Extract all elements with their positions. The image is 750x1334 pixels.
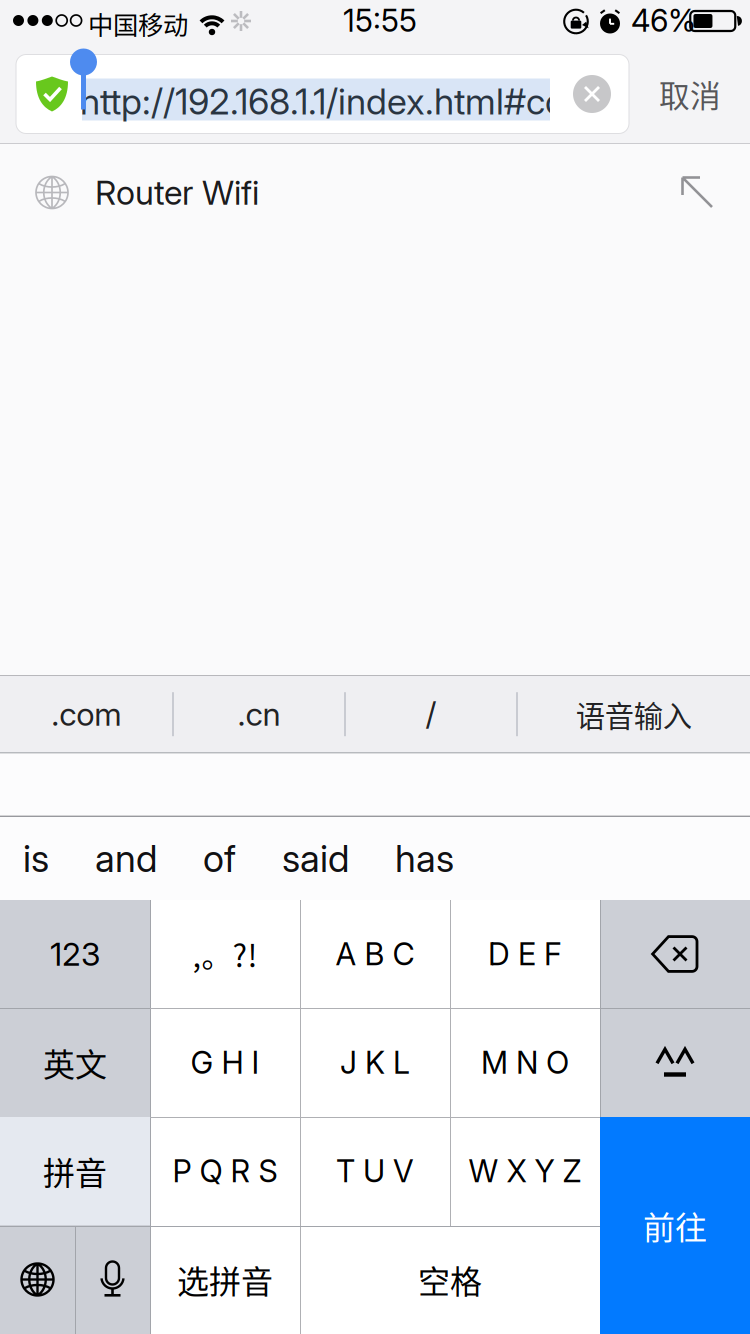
button[interactable] — [600, 1225, 750, 1334]
staticText: ,。?! — [192, 932, 257, 976]
staticText: T U V — [336, 1152, 414, 1189]
button[interactable]: 空格 — [300, 1225, 600, 1334]
staticText: and — [95, 836, 157, 881]
button[interactable]: ,。?! — [150, 900, 300, 1008]
staticText: 选拼音 — [177, 1256, 273, 1303]
staticText: 取消 — [659, 72, 721, 116]
staticText: A B C — [335, 935, 414, 972]
button[interactable]: M N O — [450, 1008, 600, 1117]
staticText: of — [203, 836, 236, 881]
staticText: / — [425, 695, 436, 733]
button[interactable]: 选拼音 — [150, 1225, 300, 1334]
button[interactable] — [75, 1225, 150, 1334]
button[interactable]: said — [259, 817, 372, 900]
staticText: 中国移动 — [88, 5, 188, 42]
button[interactable]: / — [346, 676, 516, 752]
button[interactable]: Router Wifi — [0, 144, 750, 241]
button[interactable]: and — [72, 817, 180, 900]
staticText: is — [23, 836, 49, 881]
button[interactable]: D E F — [450, 900, 600, 1008]
staticText: Router Wifi — [95, 172, 259, 213]
staticText: 46% — [631, 2, 696, 39]
button[interactable] — [600, 900, 750, 1008]
staticText: said — [282, 836, 349, 881]
staticText: 123 — [50, 935, 100, 973]
button[interactable]: T U V — [300, 1117, 450, 1225]
button[interactable] — [600, 1117, 750, 1225]
button[interactable]: 取消 — [644, 45, 736, 143]
staticText: 空格 — [418, 1256, 482, 1303]
button[interactable]: G H I — [150, 1008, 300, 1117]
button[interactable]: J K L — [300, 1008, 450, 1117]
button[interactable]: A B C — [300, 900, 450, 1008]
staticText: 前往 — [643, 1202, 707, 1249]
staticText: G H I — [190, 1044, 259, 1081]
button[interactable]: 123 — [0, 900, 150, 1008]
button[interactable]: of — [180, 817, 259, 900]
button[interactable]: http://192.168.1.1/index.html#con — [16, 45, 629, 143]
button[interactable]: 拼音 — [0, 1117, 150, 1225]
button[interactable]: 前往 — [600, 1117, 750, 1334]
button[interactable] — [0, 1225, 75, 1334]
staticText: 英文 — [43, 1039, 107, 1086]
button[interactable]: is — [0, 817, 72, 900]
staticText: .com — [51, 695, 121, 733]
staticText: P Q R S — [172, 1152, 277, 1189]
staticText: http://192.168.1.1/index.html#con — [80, 79, 585, 123]
button[interactable]: W X Y Z — [450, 1117, 600, 1225]
staticText: M N O — [481, 1044, 569, 1081]
staticText: D E F — [488, 935, 562, 972]
staticText: W X Y Z — [468, 1152, 581, 1189]
button[interactable]: has — [372, 817, 477, 900]
button[interactable]: .com — [0, 676, 172, 752]
staticText: .cn — [237, 695, 280, 733]
staticText: J K L — [340, 1044, 410, 1081]
button[interactable]: P Q R S — [150, 1117, 300, 1225]
staticText: has — [395, 836, 454, 881]
button[interactable]: Clear text — [555, 54, 629, 133]
staticText: 语音输入 — [576, 693, 692, 735]
staticText: 15:55 — [343, 2, 417, 39]
staticText: 拼音 — [43, 1148, 107, 1194]
button[interactable]: 英文 — [0, 1008, 150, 1117]
button[interactable] — [600, 1008, 750, 1117]
button[interactable]: 语音输入 — [518, 676, 750, 752]
button[interactable]: .cn — [174, 676, 344, 752]
